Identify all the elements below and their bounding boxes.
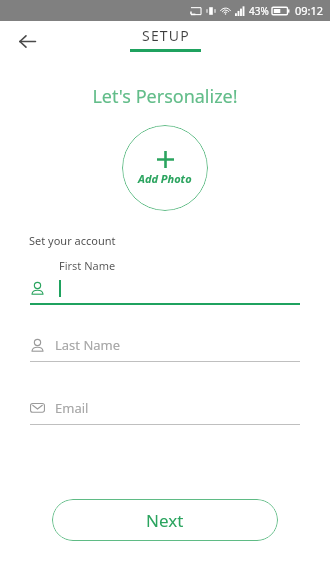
staticText: Last Name bbox=[55, 336, 121, 354]
button[interactable]: Add Photo bbox=[122, 125, 208, 211]
staticText: Next bbox=[146, 509, 184, 532]
staticText: Let's Personalize! bbox=[0, 84, 330, 109]
button[interactable]: Last Name bbox=[30, 336, 300, 362]
staticText: SETUP bbox=[142, 26, 190, 45]
button[interactable]: Email bbox=[30, 399, 300, 425]
staticText: 09:12 bbox=[295, 3, 324, 18]
staticText: Add Photo bbox=[138, 171, 192, 186]
staticText: First Name bbox=[59, 258, 116, 273]
button[interactable]: Next bbox=[52, 499, 278, 541]
staticText: 43% bbox=[249, 4, 269, 18]
staticText: Set your account bbox=[29, 233, 116, 248]
button[interactable]: Back bbox=[10, 24, 44, 58]
staticText: Email bbox=[55, 399, 89, 417]
